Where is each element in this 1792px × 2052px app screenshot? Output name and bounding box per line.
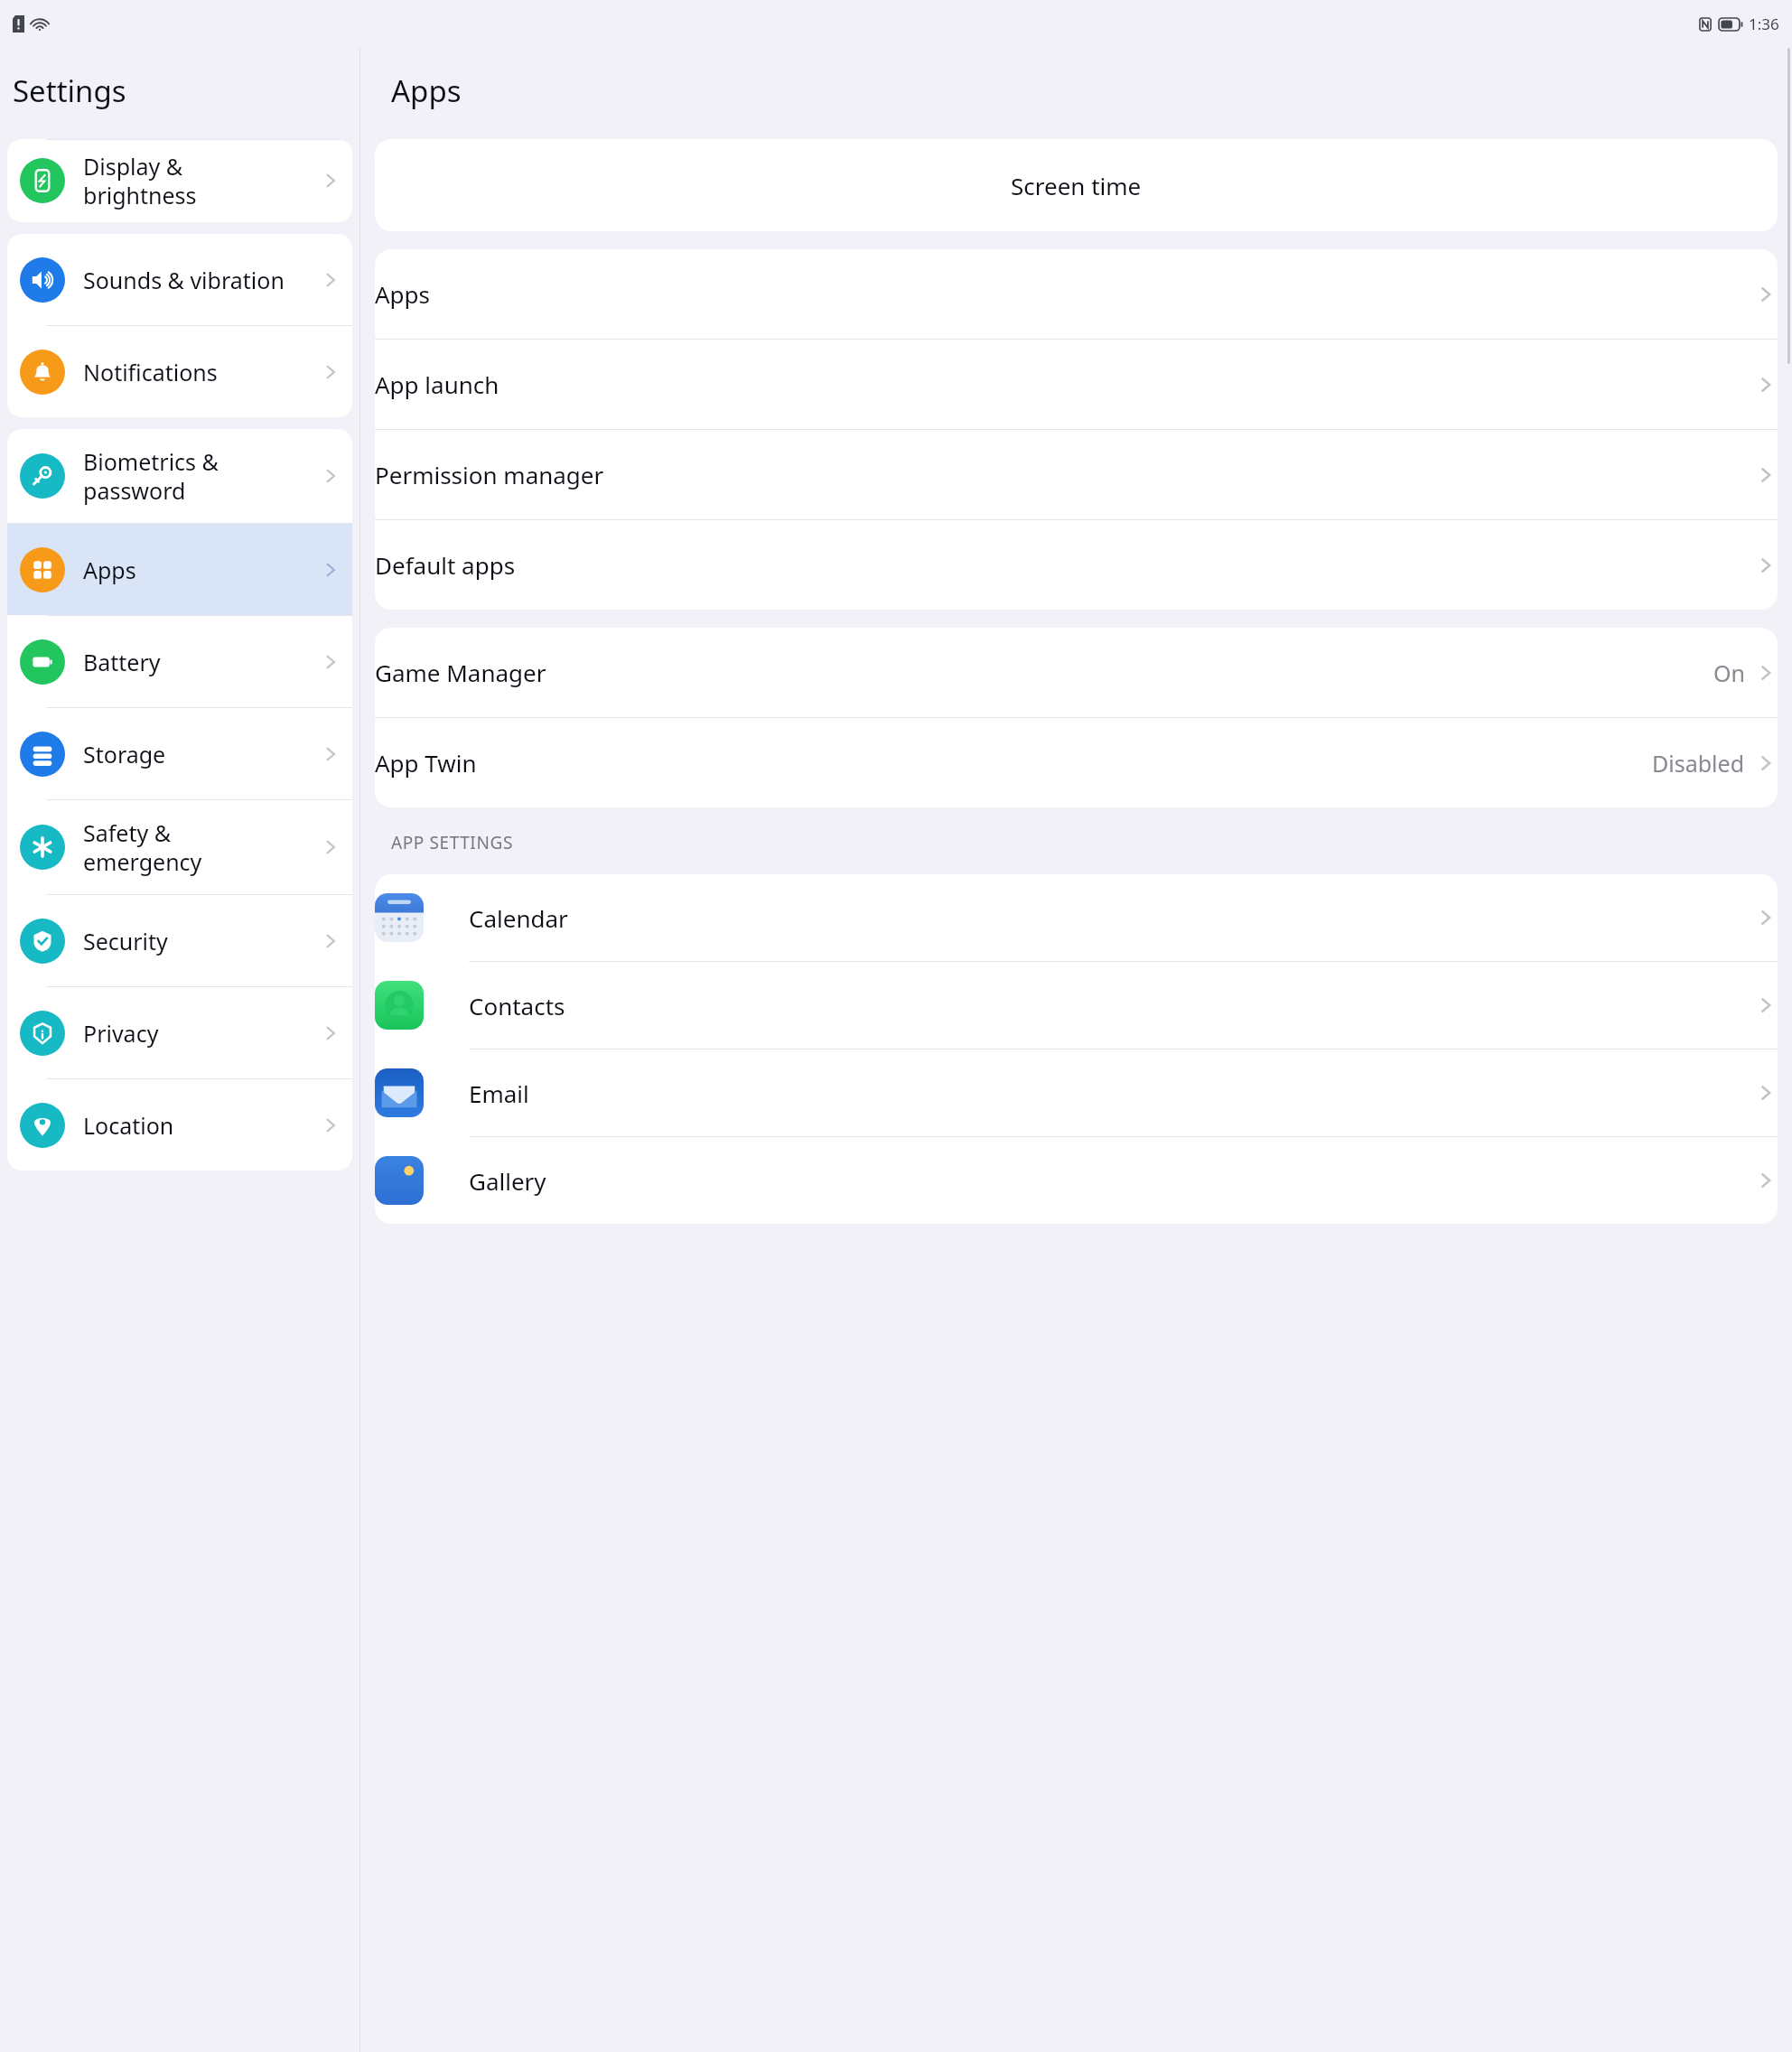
staticText: Battery [83, 647, 320, 677]
button[interactable]: Email [375, 1049, 1778, 1136]
button[interactable]: Permission manager [375, 430, 1778, 519]
staticText: Email [469, 1077, 1754, 1109]
staticText: Notifications [83, 357, 320, 387]
button[interactable]: Game Manager [375, 628, 1778, 717]
staticText: Apps [391, 70, 462, 111]
staticText: Privacy [83, 1018, 320, 1049]
button[interactable]: Safety & emergency [7, 800, 352, 894]
staticText: Apps [375, 278, 1754, 310]
staticText: 1:36 [1749, 14, 1779, 34]
button[interactable]: Privacy [7, 987, 352, 1078]
button[interactable]: Notifications [7, 326, 352, 417]
staticText: App launch [375, 368, 1754, 400]
staticText: Screen time [1011, 170, 1142, 201]
staticText: Disabled [1652, 748, 1745, 779]
staticText: Location [83, 1110, 320, 1141]
staticText: APP SETTINGS [391, 831, 513, 854]
staticText: On [1713, 658, 1745, 688]
staticText: Settings [13, 70, 126, 111]
staticText: Safety & emergency [83, 817, 320, 877]
button[interactable]: App launch [375, 340, 1778, 429]
button[interactable]: Gallery [375, 1137, 1778, 1224]
button[interactable]: Calendar [375, 874, 1778, 961]
button[interactable]: Sounds & vibration [7, 234, 352, 325]
staticText: App Twin [375, 747, 1652, 779]
button[interactable]: Contacts [375, 962, 1778, 1049]
button[interactable]: Apps [7, 524, 352, 615]
button[interactable]: Display & brightness [7, 139, 352, 222]
staticText: Game Manager [375, 657, 1713, 688]
staticText: Calendar [469, 902, 1754, 934]
button[interactable]: Storage [7, 708, 352, 799]
staticText: Storage [83, 739, 320, 769]
staticText: Display & brightness [83, 151, 320, 210]
staticText: Contacts [469, 990, 1754, 1021]
button[interactable]: Screen time [375, 139, 1778, 231]
button[interactable]: App Twin [375, 718, 1778, 807]
button[interactable]: Apps [375, 249, 1778, 339]
staticText: Security [83, 926, 320, 956]
staticText: Permission manager [375, 459, 1754, 490]
staticText: Default apps [375, 549, 1754, 581]
button[interactable]: Default apps [375, 520, 1778, 610]
button[interactable]: Security [7, 895, 352, 986]
button[interactable]: Battery [7, 616, 352, 707]
staticText: Biometrics & password [83, 446, 320, 506]
staticText: Gallery [469, 1165, 1754, 1197]
staticText: Apps [83, 555, 320, 585]
staticText: Sounds & vibration [83, 265, 320, 295]
button[interactable]: Location [7, 1079, 352, 1171]
button[interactable]: Biometrics & password [7, 429, 352, 523]
